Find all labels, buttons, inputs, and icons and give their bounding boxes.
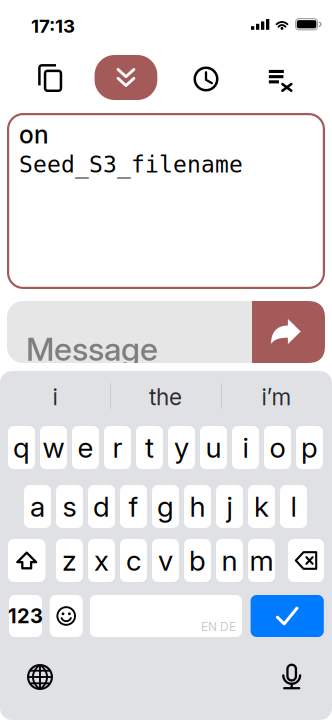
button[interactable]: Space	[90, 595, 242, 637]
staticText: w	[42, 431, 64, 464]
button[interactable]: m	[248, 539, 275, 582]
staticText: on	[19, 120, 49, 149]
staticText: 17:13	[31, 15, 75, 37]
staticText: i	[52, 383, 57, 411]
button[interactable]: i	[232, 426, 259, 469]
staticText: i’m	[261, 383, 291, 411]
button[interactable]: Delete	[288, 539, 324, 582]
button[interactable]: u	[200, 426, 227, 469]
button[interactable]: q	[8, 426, 35, 469]
staticText: f	[128, 490, 138, 523]
button[interactable]: j	[216, 485, 243, 528]
button[interactable]: x	[88, 539, 115, 582]
button[interactable]: Send	[252, 301, 325, 363]
staticText: m	[249, 544, 273, 577]
staticText: p	[301, 431, 318, 464]
staticText: z	[62, 544, 77, 577]
button[interactable]: i	[0, 371, 110, 423]
staticText: the	[149, 383, 182, 411]
button[interactable]: a	[24, 485, 51, 528]
staticText: g	[157, 490, 174, 523]
button[interactable]: k	[248, 485, 275, 528]
staticText: t	[145, 431, 154, 464]
button[interactable]: o	[264, 426, 291, 469]
staticText: q	[13, 431, 30, 464]
button[interactable]: Return	[251, 595, 324, 637]
staticText: 123	[8, 604, 43, 628]
staticText: e	[77, 431, 93, 464]
staticText: Message	[26, 330, 158, 368]
staticText: a	[30, 490, 45, 523]
button[interactable]: r	[104, 426, 131, 469]
staticText: x	[94, 544, 109, 577]
button[interactable]: Message	[7, 301, 297, 363]
button[interactable]: Emoji	[50, 595, 83, 637]
button[interactable]: t	[136, 426, 163, 469]
button[interactable]: p	[296, 426, 323, 469]
button[interactable]: Clear text	[269, 70, 293, 91]
button[interactable]: y	[168, 426, 195, 469]
button[interactable]: c	[120, 539, 147, 582]
button[interactable]: Duplicate	[38, 64, 62, 92]
button[interactable]: l	[280, 485, 307, 528]
button[interactable]: History	[193, 66, 218, 91]
button[interactable]: g	[152, 485, 179, 528]
button[interactable]: i’m	[221, 371, 332, 423]
staticText: l	[290, 490, 296, 523]
button[interactable]: h	[184, 485, 211, 528]
staticText: b	[189, 544, 206, 577]
button[interactable]: n	[216, 539, 243, 582]
staticText: j	[226, 490, 232, 523]
button[interactable]: z	[56, 539, 83, 582]
button[interactable]: 123	[5, 595, 45, 637]
button[interactable]: d	[88, 485, 115, 528]
staticText: c	[126, 544, 141, 577]
button[interactable]: the	[110, 371, 221, 423]
staticText: v	[158, 544, 173, 577]
button[interactable]: b	[184, 539, 211, 582]
staticText: k	[254, 490, 269, 523]
staticText: i	[242, 431, 248, 464]
staticText: r	[112, 431, 122, 464]
button[interactable]: Next keyboard	[27, 664, 53, 690]
staticText: y	[174, 431, 189, 464]
staticText: EN DE	[201, 619, 236, 634]
button[interactable]: e	[72, 426, 99, 469]
staticText: h	[189, 490, 205, 523]
staticText: s	[62, 490, 76, 523]
button[interactable]: w	[40, 426, 67, 469]
staticText: o	[269, 431, 285, 464]
button[interactable]: Collapse	[95, 55, 157, 100]
button[interactable]: Shift	[8, 539, 45, 582]
staticText: Seed_S3_filename	[19, 151, 243, 178]
button[interactable]: v	[152, 539, 179, 582]
staticText: d	[93, 490, 110, 523]
staticText: u	[205, 431, 221, 464]
staticText: n	[221, 544, 237, 577]
button[interactable]: f	[120, 485, 147, 528]
button[interactable]: Dictate	[280, 663, 303, 689]
button[interactable]: s	[56, 485, 83, 528]
